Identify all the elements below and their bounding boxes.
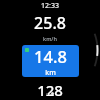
button[interactable]: 25.8 [18, 12, 82, 42]
button[interactable]: 128 [18, 80, 82, 100]
staticText: 12:33 [41, 1, 59, 11]
button[interactable]: 14.8 [22, 45, 79, 77]
staticText: km [45, 68, 56, 77]
staticText: 128 [37, 80, 63, 100]
staticText: 14.8 [34, 45, 67, 67]
staticText: km/h [43, 35, 57, 42]
staticText: 25.8 [34, 12, 66, 34]
